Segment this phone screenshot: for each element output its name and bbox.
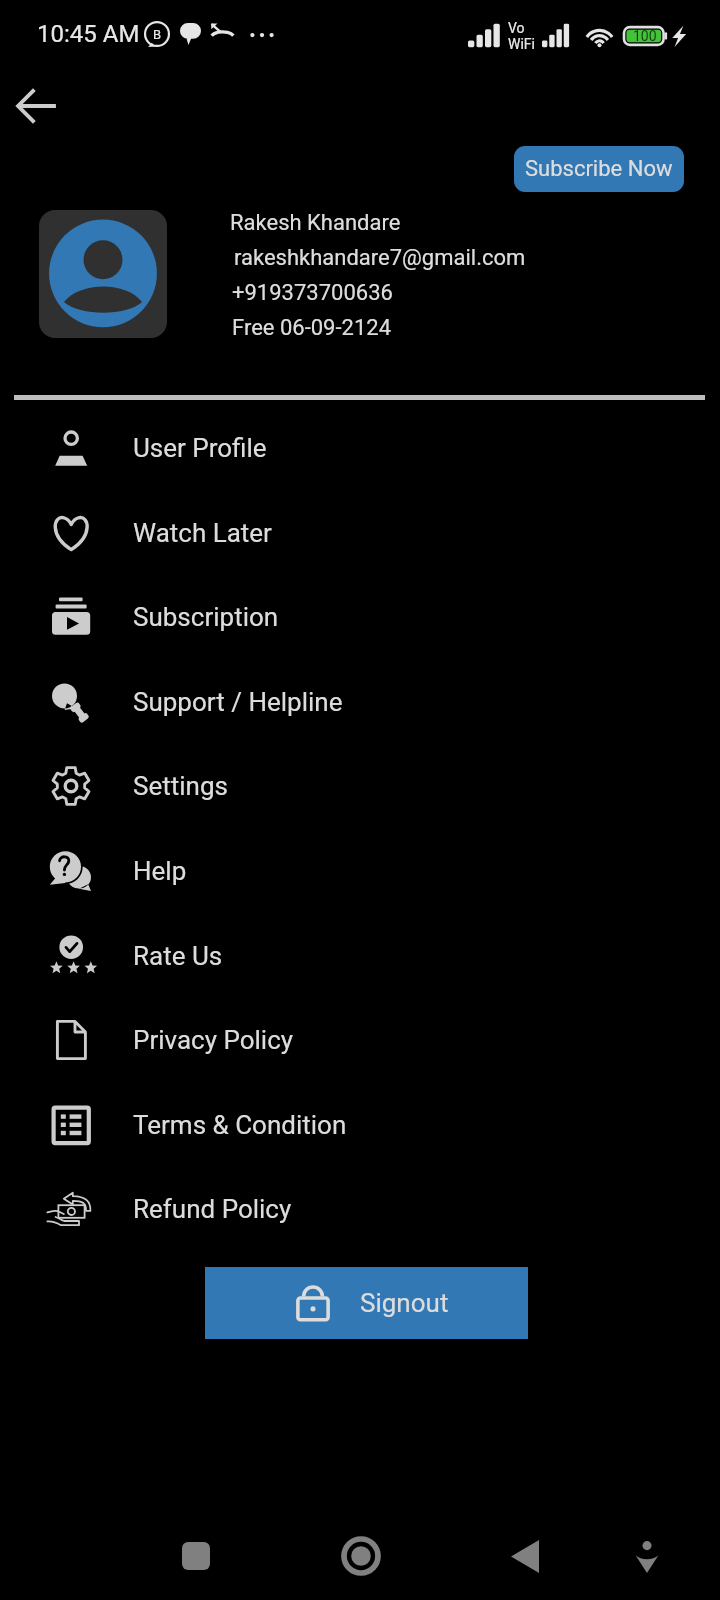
staticText: Rakesh Khandare: [230, 210, 401, 236]
staticText: Settings: [133, 771, 228, 801]
staticText: Signout: [360, 1288, 449, 1318]
button[interactable]: Back: [10, 79, 64, 133]
button[interactable]: Support / Helpline: [0, 659, 720, 744]
button[interactable]: Terms & Condition: [0, 1082, 720, 1167]
button[interactable]: Home: [324, 1522, 397, 1590]
staticText: Refund Policy: [133, 1194, 292, 1224]
staticText: Rate Us: [133, 941, 223, 971]
button[interactable]: Subscription: [0, 574, 720, 659]
staticText: 10:45 AM: [37, 20, 140, 48]
staticText: Terms & Condition: [133, 1110, 347, 1140]
button[interactable]: Help: [0, 828, 720, 913]
staticText: B: [153, 27, 162, 42]
staticText: Privacy Policy: [133, 1025, 294, 1055]
staticText: Watch Later: [133, 518, 272, 548]
staticText: Help: [133, 856, 187, 886]
button[interactable]: Privacy Policy: [0, 997, 720, 1082]
staticText: 100: [633, 28, 657, 44]
button[interactable]: Recents: [159, 1522, 232, 1590]
button[interactable]: Signout: [205, 1267, 528, 1339]
staticText: Vo: [508, 20, 525, 36]
staticText: +919373700636: [232, 280, 393, 306]
staticText: Subscription: [133, 602, 279, 632]
button[interactable]: Rate Us: [0, 913, 720, 998]
button[interactable]: Subscribe Now: [514, 146, 684, 192]
button[interactable]: Refund Policy: [0, 1166, 720, 1251]
button[interactable]: Settings: [0, 743, 720, 828]
staticText: Free 06-09-2124: [232, 315, 391, 341]
staticText: WiFi: [508, 36, 535, 52]
staticText: Support / Helpline: [133, 687, 343, 717]
button[interactable]: User Profile: [0, 405, 720, 490]
button[interactable]: Back: [488, 1522, 561, 1590]
staticText: rakeshkhandare7@gmail.com: [234, 245, 526, 271]
staticText: Subscribe Now: [525, 156, 673, 182]
button[interactable]: Watch Later: [0, 490, 720, 575]
staticText: User Profile: [133, 433, 267, 463]
button[interactable]: Assistant: [610, 1522, 683, 1590]
